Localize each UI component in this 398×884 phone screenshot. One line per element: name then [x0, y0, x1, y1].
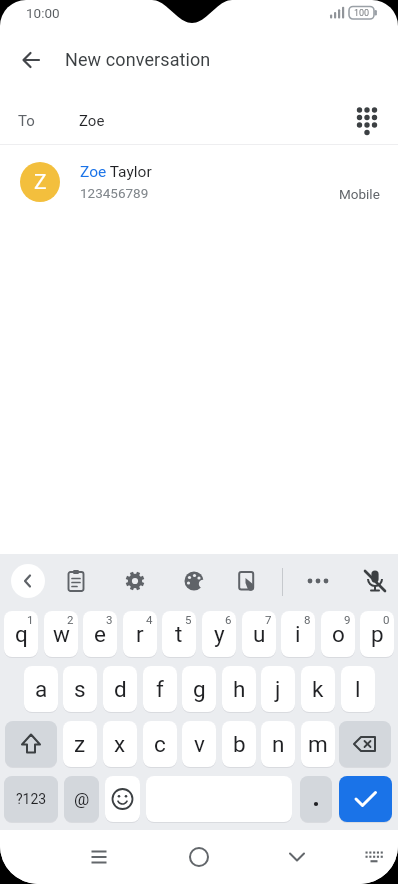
staticText: w	[53, 621, 70, 647]
staticText: 10:00	[26, 5, 60, 21]
staticText: c	[154, 731, 166, 757]
staticText: j	[275, 676, 281, 702]
button[interactable]	[339, 721, 391, 767]
staticText: i	[295, 621, 301, 647]
staticText: q	[15, 621, 28, 647]
button[interactable]	[277, 837, 317, 877]
staticText: x	[114, 731, 126, 757]
staticText: 3	[106, 613, 113, 626]
button[interactable]: u	[242, 611, 276, 657]
staticText: 1	[27, 613, 34, 626]
staticText: o	[332, 621, 345, 647]
button[interactable]: b	[222, 721, 256, 767]
staticText: New conversation	[65, 49, 211, 70]
staticText: 9	[344, 613, 351, 626]
button[interactable]: s	[63, 666, 97, 712]
button[interactable]	[227, 561, 267, 601]
staticText: m	[308, 731, 328, 757]
staticText: v	[194, 731, 205, 757]
staticText: y	[214, 621, 225, 647]
staticText: d	[114, 676, 127, 702]
button[interactable]: Z	[0, 150, 398, 212]
button[interactable]: p	[360, 611, 394, 657]
staticText: 8	[304, 613, 311, 626]
button[interactable]: w	[44, 611, 78, 657]
button[interactable]: d	[103, 666, 137, 712]
button[interactable]	[298, 561, 338, 601]
button[interactable]: v	[182, 721, 216, 767]
button[interactable]	[13, 42, 49, 78]
button[interactable]: h	[222, 666, 256, 712]
button[interactable]: q	[4, 611, 38, 657]
button[interactable]: @	[64, 776, 99, 822]
staticText: 7	[265, 613, 272, 626]
button[interactable]: j	[261, 666, 295, 712]
staticText: u	[253, 621, 266, 647]
button[interactable]: o	[321, 611, 355, 657]
button[interactable]: y	[202, 611, 236, 657]
staticText: Zoe Taylor	[80, 163, 152, 181]
staticText: To	[18, 112, 35, 130]
button[interactable]	[5, 721, 57, 767]
button[interactable]: x	[103, 721, 137, 767]
button[interactable]	[56, 561, 96, 601]
staticText: l	[355, 676, 361, 702]
button[interactable]: r	[123, 611, 157, 657]
staticText: r	[136, 621, 144, 647]
staticText: n	[272, 731, 285, 757]
staticText: 0	[383, 613, 390, 626]
button[interactable]: ?123	[4, 776, 58, 822]
button[interactable]	[105, 776, 140, 822]
button[interactable]	[174, 561, 214, 601]
button[interactable]: n	[261, 721, 295, 767]
button[interactable]	[11, 564, 45, 598]
staticText: h	[233, 676, 246, 702]
staticText: k	[312, 676, 324, 702]
staticText: t	[175, 621, 183, 647]
staticText: e	[94, 621, 106, 647]
staticText: 6	[225, 613, 232, 626]
button[interactable]: m	[301, 721, 335, 767]
button[interactable]: i	[281, 611, 315, 657]
button[interactable]: z	[63, 721, 97, 767]
button[interactable]	[347, 101, 387, 141]
button[interactable]	[339, 776, 392, 822]
button[interactable]: k	[301, 666, 335, 712]
staticText: Z	[34, 170, 47, 195]
staticText: b	[233, 731, 246, 757]
staticText: ?123	[16, 791, 47, 807]
button[interactable]: f	[143, 666, 177, 712]
button[interactable]	[300, 776, 332, 822]
staticText: 100	[354, 8, 370, 19]
button[interactable]: a	[24, 666, 58, 712]
staticText: Mobile	[339, 186, 380, 202]
staticText: 123456789	[80, 185, 149, 201]
button[interactable]: t	[162, 611, 196, 657]
button[interactable]	[179, 837, 219, 877]
staticText: a	[35, 676, 48, 702]
staticText: Zoe	[79, 112, 105, 130]
button[interactable]: l	[341, 666, 375, 712]
button[interactable]: g	[182, 666, 216, 712]
staticText: f	[156, 676, 164, 702]
staticText: p	[371, 621, 384, 647]
button[interactable]: c	[143, 721, 177, 767]
button[interactable]: e	[83, 611, 117, 657]
staticText: @	[74, 789, 90, 809]
staticText: 4	[146, 613, 153, 626]
staticText: g	[193, 676, 206, 702]
staticText: 2	[67, 613, 74, 626]
button[interactable]	[355, 561, 395, 601]
button[interactable]	[115, 561, 155, 601]
staticText: 5	[185, 613, 192, 626]
staticText: s	[74, 676, 86, 702]
button[interactable]	[354, 837, 394, 877]
staticText: z	[74, 731, 86, 757]
button[interactable]	[79, 837, 119, 877]
